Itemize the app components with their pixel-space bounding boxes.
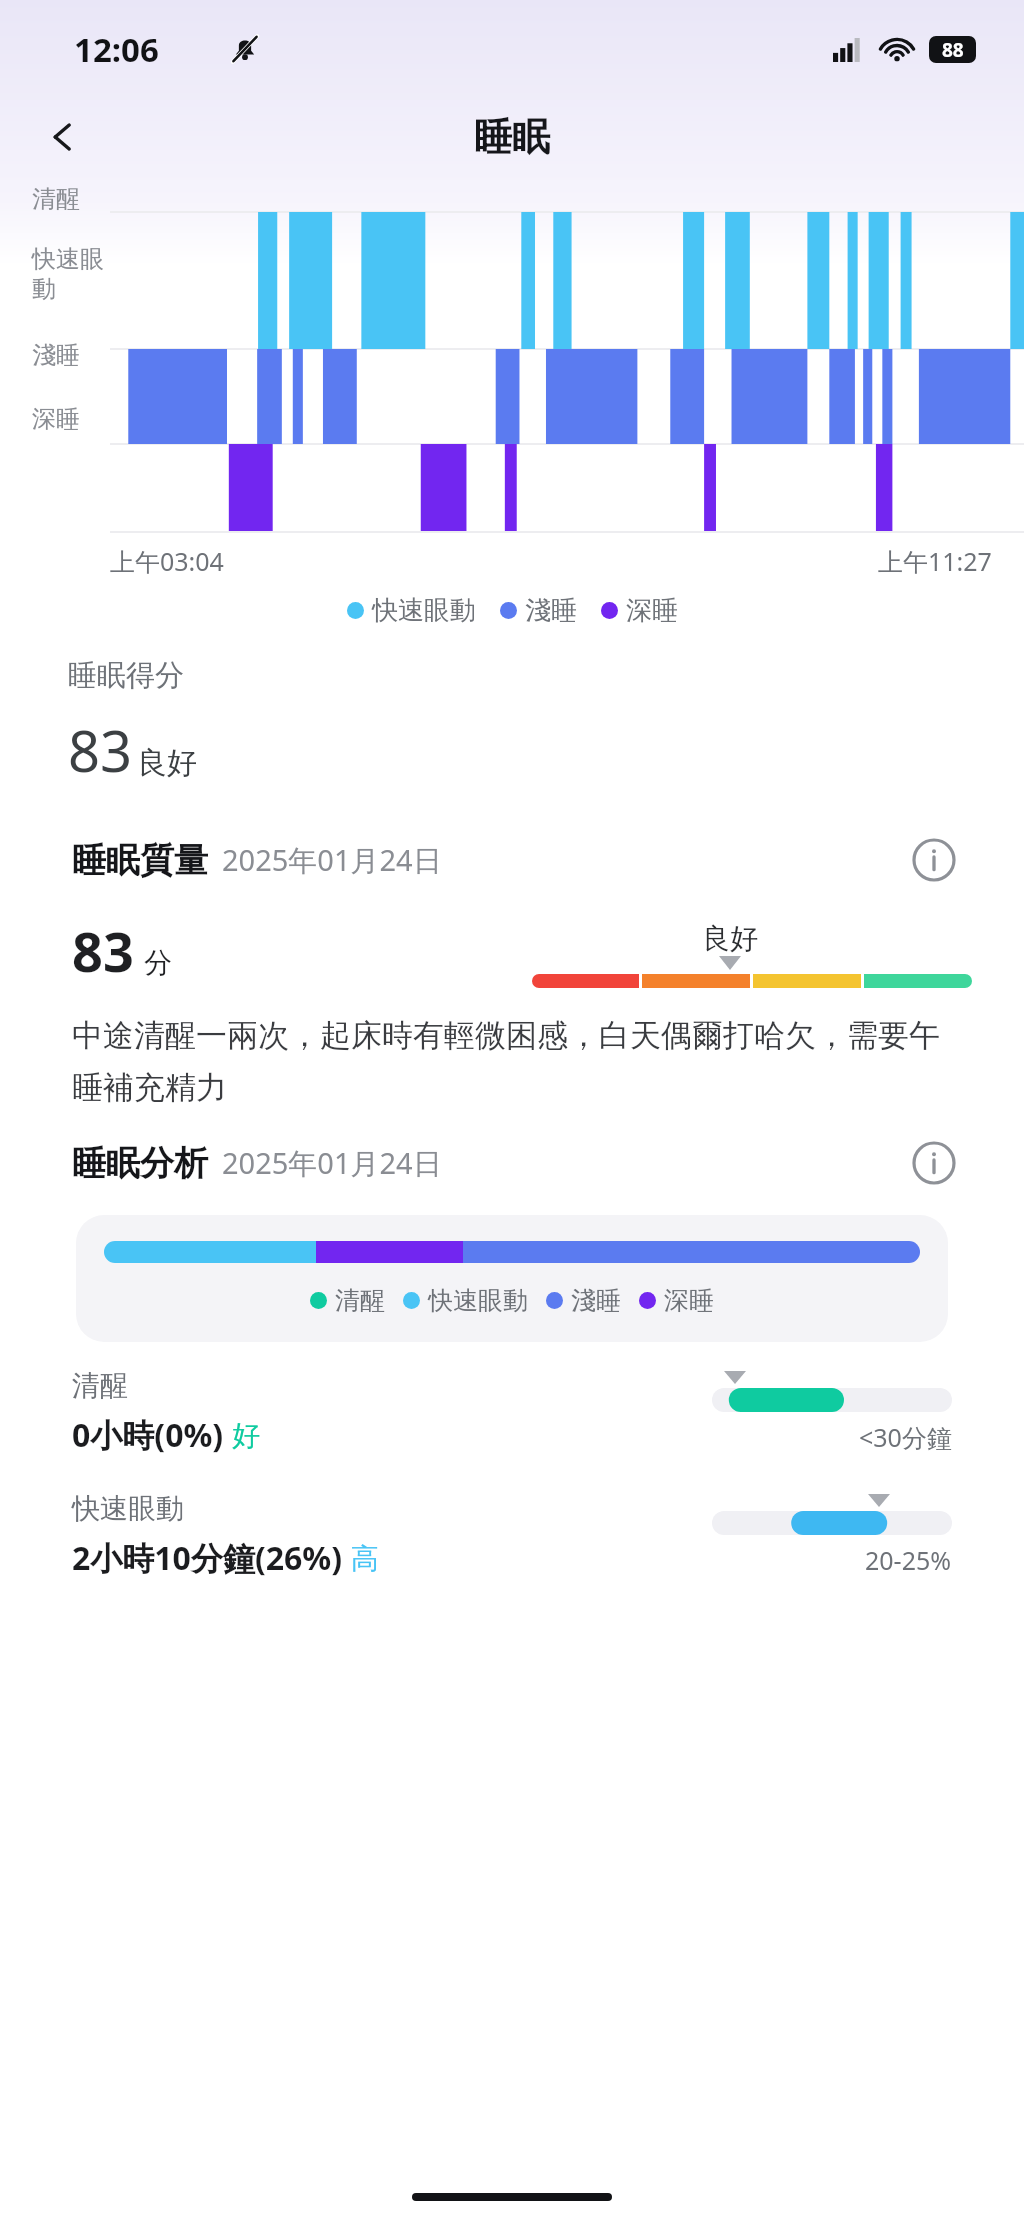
staticText: 88 (942, 37, 964, 63)
staticText: 12:06 (74, 27, 159, 72)
staticText: 淺睡 (525, 594, 577, 627)
staticText: 0小時(0%) (72, 1413, 224, 1457)
staticText: 上午11:27 (878, 544, 992, 578)
staticText: 淺睡 (32, 340, 80, 370)
staticText: 83 (72, 914, 134, 988)
button[interactable]: Sleep analysis info (906, 1135, 962, 1191)
staticText: 83 (68, 712, 133, 788)
staticText: 中途清醒一兩次，起床時有輕微困感，白天偶爾打哈欠，需要午睡補充精力 (72, 1016, 952, 1107)
staticText: 良好 (137, 744, 197, 782)
staticText: 快速眼動 (372, 594, 476, 627)
staticText: 高 (351, 1541, 379, 1576)
staticText: 良好 (702, 921, 758, 956)
staticText: 2小時10分鐘(26%) (72, 1536, 343, 1580)
button[interactable]: Sleep quality info (906, 832, 962, 888)
staticText: 淺睡 (571, 1285, 621, 1316)
staticText: 睡眠得分 (68, 657, 184, 694)
staticText: 分 (144, 945, 172, 980)
staticText: 快速眼動 (428, 1285, 528, 1316)
staticText: 2025年01月24日 (222, 840, 442, 880)
staticText: 上午03:04 (110, 544, 224, 578)
button[interactable]: 清醒 (0, 1368, 1024, 1457)
button[interactable]: 快速眼動 (0, 1491, 1024, 1580)
staticText: 快速眼動 (72, 1491, 184, 1526)
staticText: 睡眠 (474, 113, 550, 161)
staticText: 好 (232, 1418, 260, 1453)
button[interactable]: 清醒 (76, 1215, 948, 1342)
staticText: 深睡 (664, 1285, 714, 1316)
staticText: 睡眠質量 (72, 839, 208, 882)
staticText: <30分鐘 (859, 1420, 952, 1454)
staticText: 快速眼 (32, 244, 104, 274)
button[interactable]: Back (28, 103, 96, 171)
staticText: 清醒 (72, 1368, 128, 1403)
staticText: 清醒 (32, 184, 80, 214)
staticText: 睡眠分析 (72, 1142, 208, 1185)
staticText: 深睡 (626, 594, 678, 627)
staticText: 動 (32, 274, 56, 304)
staticText: 清醒 (335, 1285, 385, 1316)
staticText: 20-25% (865, 1543, 952, 1577)
staticText: 深睡 (32, 404, 80, 434)
staticText: 2025年01月24日 (222, 1143, 442, 1183)
